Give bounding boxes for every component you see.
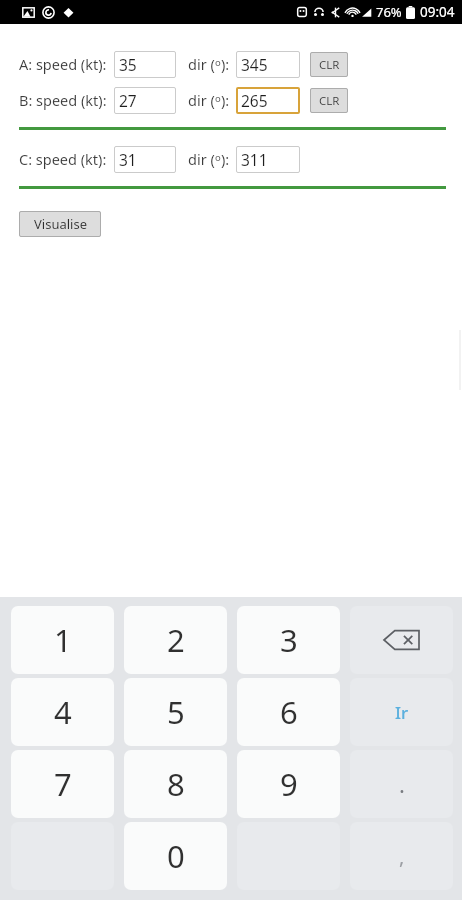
- staticText: 5: [167, 691, 185, 733]
- button[interactable]: 7: [11, 750, 114, 818]
- staticText: 0: [167, 835, 185, 877]
- staticText: 09:04: [420, 3, 455, 21]
- staticText: 4: [54, 691, 72, 733]
- staticText: dir (: [188, 54, 215, 74]
- staticText: ,: [399, 843, 405, 870]
- staticText: ):: [221, 90, 230, 110]
- button[interactable]: CLR: [310, 88, 348, 113]
- staticText: 76%: [376, 3, 402, 21]
- staticText: C: speed (kt):: [19, 149, 107, 169]
- button[interactable]: 31: [114, 146, 176, 173]
- staticText: CLR: [319, 93, 340, 109]
- button[interactable]: Language: [350, 678, 453, 746]
- staticText: 1: [54, 619, 72, 661]
- button[interactable]: 6: [237, 678, 340, 746]
- button[interactable]: 5: [124, 678, 227, 746]
- staticText: o: [215, 92, 221, 105]
- staticText: CLR: [319, 57, 340, 73]
- staticText: ):: [221, 149, 230, 169]
- button[interactable]: 35: [114, 51, 176, 78]
- staticText: o: [215, 151, 221, 164]
- button[interactable]: 3: [237, 606, 340, 674]
- button[interactable]: 8: [124, 750, 227, 818]
- staticText: dir (: [188, 149, 215, 169]
- staticText: o: [215, 56, 221, 69]
- staticText: dir (: [188, 90, 215, 110]
- staticText: 311: [241, 149, 268, 170]
- button[interactable]: 2: [124, 606, 227, 674]
- button[interactable]: 311: [236, 146, 300, 173]
- button[interactable]: 1: [11, 606, 114, 674]
- button[interactable]: 345: [236, 51, 300, 78]
- staticText: 6: [280, 691, 298, 733]
- staticText: 8: [167, 763, 185, 805]
- button[interactable]: 9: [237, 750, 340, 818]
- button[interactable]: 0: [124, 822, 227, 890]
- button[interactable]: Decimal point: [350, 750, 453, 818]
- staticText: A: speed (kt):: [19, 54, 107, 74]
- staticText: 7: [54, 763, 72, 805]
- staticText: B: speed (kt):: [19, 90, 107, 110]
- button[interactable]: Backspace: [350, 606, 453, 674]
- staticText: 27: [119, 90, 137, 111]
- staticText: 265: [241, 90, 268, 111]
- button[interactable]: 27: [114, 87, 176, 114]
- staticText: 3: [280, 619, 298, 661]
- staticText: 345: [241, 54, 268, 75]
- staticText: Ir: [395, 701, 409, 724]
- staticText: Visualise: [34, 215, 87, 233]
- button[interactable]: Visualise: [19, 211, 101, 237]
- staticText: 35: [119, 54, 137, 75]
- button[interactable]: 265: [236, 87, 300, 114]
- staticText: 2: [167, 619, 185, 661]
- staticText: 9: [280, 763, 298, 805]
- staticText: ):: [221, 54, 230, 74]
- staticText: 31: [119, 149, 137, 170]
- button[interactable]: CLR: [310, 52, 348, 77]
- staticText: .: [399, 769, 405, 799]
- button[interactable]: 4: [11, 678, 114, 746]
